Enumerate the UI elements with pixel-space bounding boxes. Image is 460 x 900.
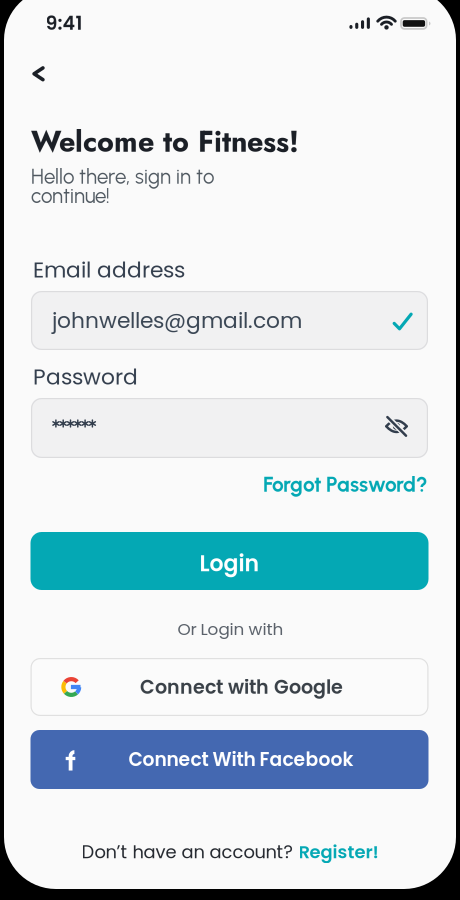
button[interactable] (383, 418, 410, 438)
button[interactable]: Register! (298, 839, 378, 864)
staticText: 9:41 (45, 10, 82, 36)
staticText: Connect With Facebook (128, 746, 353, 772)
staticText: Hello there, sign in to (31, 164, 214, 189)
staticText: Forgot Password? (263, 472, 428, 497)
staticText: continue! (31, 184, 110, 208)
staticText: Welcome to Fitness! (31, 121, 299, 162)
button[interactable]: Forgot Password? (263, 472, 428, 497)
staticText: Don’t have an account? (81, 839, 292, 864)
button[interactable]: Connect With Facebook (30, 730, 428, 789)
staticText: Or Login with (177, 617, 283, 641)
staticText: Email address (33, 255, 185, 285)
staticText: Password (33, 362, 138, 392)
staticText: Register! (298, 839, 378, 864)
button[interactable]: Login (30, 532, 428, 590)
button[interactable] (18, 56, 58, 92)
staticText: Login (199, 548, 259, 579)
staticText: Connect with Google (140, 674, 343, 700)
staticText: johnwelles@gmail.com (52, 305, 302, 336)
button[interactable]: Connect with Google (30, 658, 428, 716)
